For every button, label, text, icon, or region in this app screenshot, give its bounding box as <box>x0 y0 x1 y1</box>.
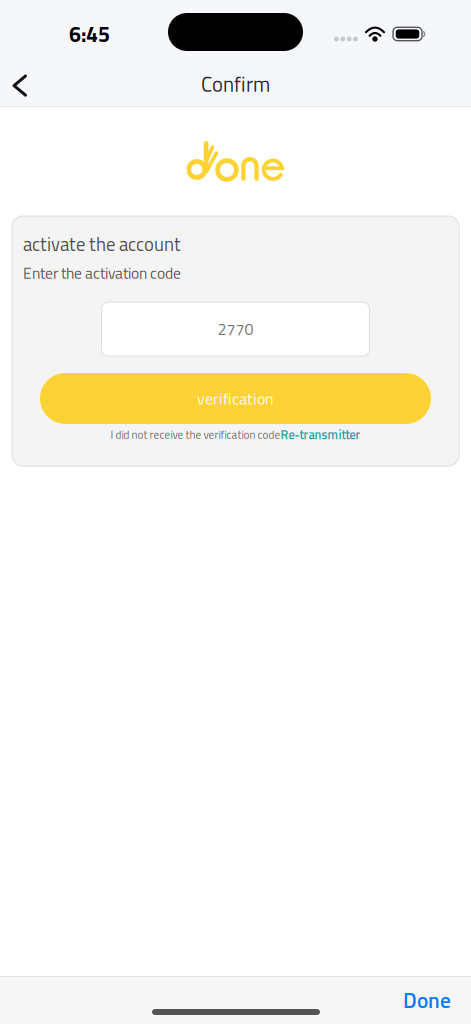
staticText: 6:45 <box>69 18 110 50</box>
button[interactable]: Back <box>0 64 46 108</box>
staticText: verification <box>197 386 274 411</box>
staticText: I did not receive the verification code <box>110 426 280 443</box>
staticText: Re-transmitter <box>280 425 360 444</box>
staticText: Enter the activation code <box>23 261 181 285</box>
staticText: Done <box>403 984 451 1016</box>
button[interactable]: Re-transmitter <box>280 425 360 444</box>
staticText: 2770 <box>217 317 253 341</box>
staticText: activate the account <box>23 230 181 258</box>
button[interactable]: Done <box>386 978 468 1022</box>
button[interactable]: verification <box>40 373 431 424</box>
staticText: Confirm <box>201 68 270 100</box>
